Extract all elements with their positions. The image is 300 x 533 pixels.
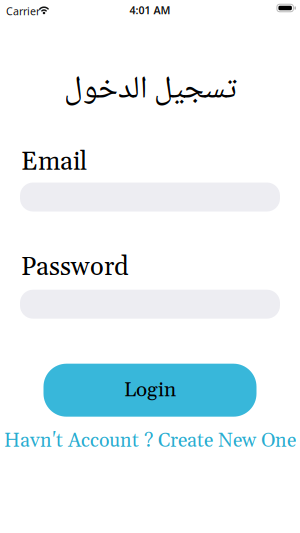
staticText: Password bbox=[21, 251, 129, 284]
button[interactable]: Login bbox=[43, 364, 256, 417]
staticText: تسجيل الدخول bbox=[63, 64, 236, 117]
secureTextField[interactable]: Password bbox=[20, 289, 280, 319]
staticText: Havn't Account ? Create New One bbox=[4, 429, 296, 453]
textField[interactable]: Email bbox=[20, 182, 280, 212]
staticText: Carrier bbox=[6, 4, 40, 18]
staticText: Email bbox=[21, 146, 87, 179]
staticText: 4:01 AM bbox=[129, 3, 170, 17]
staticText: Login bbox=[124, 377, 176, 403]
button[interactable]: Havn't Account ? Create New One bbox=[4, 429, 296, 453]
